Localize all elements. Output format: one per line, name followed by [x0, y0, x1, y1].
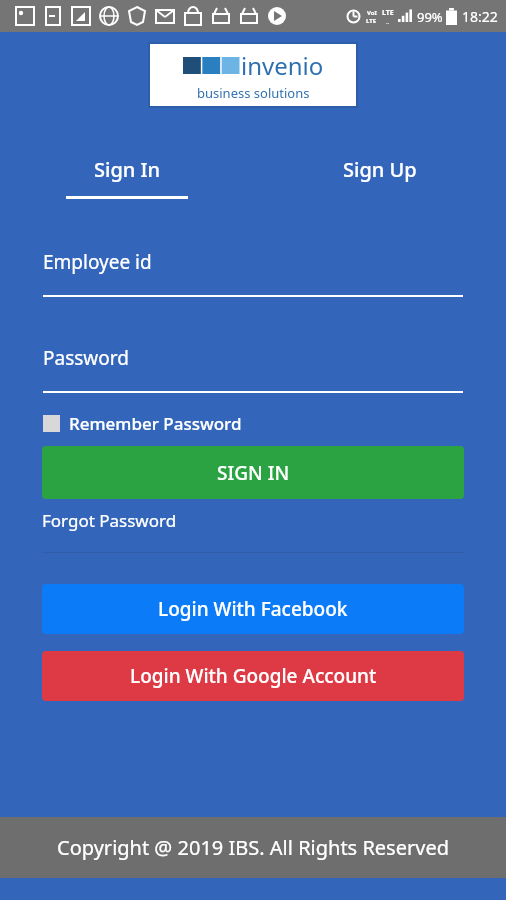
- staticText: LTE: [382, 8, 394, 18]
- staticText: Employee id: [43, 249, 152, 275]
- staticText: Login With Facebook: [158, 596, 348, 622]
- button[interactable]: Sign Up: [253, 156, 506, 199]
- staticText: Remember Password: [69, 412, 242, 435]
- staticText: Forgot Password: [42, 509, 177, 532]
- button[interactable]: Forgot Password: [42, 509, 177, 532]
- staticText: Login With Google Account: [130, 663, 377, 689]
- staticText: LTE: [366, 17, 377, 25]
- button[interactable]: Login With Facebook: [42, 584, 464, 634]
- staticText: SIGN IN: [217, 460, 290, 486]
- staticText: Copyright @ 2019 IBS. All Rights Reserve…: [57, 834, 449, 861]
- button[interactable]: Employee id: [43, 249, 463, 297]
- button[interactable]: SIGN IN: [42, 446, 464, 499]
- staticText: Sign Up: [343, 156, 417, 183]
- staticText: 18:22: [462, 7, 498, 26]
- button[interactable]: Remember Password: [43, 412, 463, 435]
- staticText: ..: [386, 18, 390, 26]
- button[interactable]: Sign In: [0, 156, 253, 199]
- staticText: VoI: [367, 9, 377, 17]
- staticText: invenio: [241, 49, 324, 82]
- staticText: Sign In: [94, 156, 161, 183]
- staticText: Password: [43, 345, 129, 371]
- staticText: 99%: [417, 8, 443, 26]
- button[interactable]: Login With Google Account: [42, 651, 464, 701]
- button[interactable]: Password: [43, 345, 463, 393]
- staticText: business solutions: [197, 84, 310, 102]
